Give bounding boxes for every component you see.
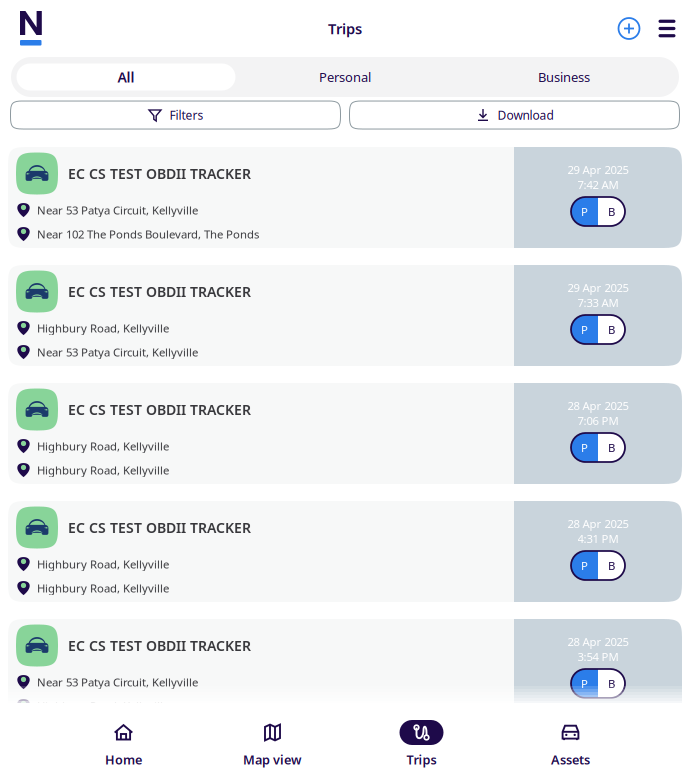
staticText: EC CS TEST OBDII TRACKER	[68, 636, 251, 655]
staticText: P	[581, 322, 588, 337]
button[interactable]: Filters	[10, 101, 340, 129]
staticText: B	[608, 558, 615, 573]
button[interactable]: Home	[49, 703, 198, 772]
staticText: Business	[538, 68, 590, 86]
staticText: Highbury Road, Kellyville	[37, 462, 169, 478]
staticText: Near 53 Patya Circuit, Kellyville	[37, 202, 198, 218]
staticText: P	[581, 440, 588, 455]
staticText: Trips	[328, 18, 362, 38]
button[interactable]: EC CS TEST OBDII TRACKER	[8, 265, 682, 366]
button[interactable]: Assets	[496, 703, 645, 772]
staticText: P	[581, 558, 588, 573]
staticText: Assets	[551, 751, 590, 768]
staticText: All	[117, 67, 134, 87]
button[interactable]: Home logo	[10, 7, 53, 50]
staticText: 29 Apr 2025	[567, 162, 628, 177]
button[interactable]: Personal	[235, 63, 454, 90]
button[interactable]: EC CS TEST OBDII TRACKER	[8, 147, 682, 248]
staticText: Download	[497, 107, 553, 123]
staticText: EC CS TEST OBDII TRACKER	[68, 282, 251, 301]
staticText: EC CS TEST OBDII TRACKER	[68, 518, 251, 537]
staticText: 7:06 PM	[577, 413, 618, 428]
staticText: Highbury Road, Kellyville	[37, 438, 169, 454]
staticText: Highbury Road, Kellyville	[37, 320, 169, 336]
button[interactable]: Download	[349, 101, 679, 129]
staticText: P	[581, 676, 588, 691]
staticText: Near 102 The Ponds Boulevard, The Ponds	[37, 226, 259, 242]
button[interactable]: EC CS TEST OBDII TRACKER	[8, 383, 682, 484]
staticText: 28 Apr 2025	[567, 516, 628, 531]
button[interactable]: EC CS TEST OBDII TRACKER	[8, 501, 682, 602]
staticText: B	[608, 676, 615, 691]
staticText: B	[608, 440, 615, 455]
staticText: P	[581, 204, 588, 219]
staticText: Highbury Road, Kellyville	[37, 556, 169, 572]
staticText: 3:54 PM	[577, 649, 618, 664]
staticText: Trips	[406, 751, 436, 768]
button[interactable]: Trips	[347, 703, 496, 772]
staticText: B	[608, 204, 615, 219]
staticText: Personal	[319, 68, 371, 86]
staticText: 29 Apr 2025	[567, 280, 628, 295]
staticText: Near 53 Patya Circuit, Kellyville	[37, 344, 198, 360]
button[interactable]: Menu	[646, 7, 688, 50]
staticText: EC CS TEST OBDII TRACKER	[68, 400, 251, 419]
staticText: Map view	[243, 751, 302, 768]
staticText: 28 Apr 2025	[567, 398, 628, 413]
staticText: 28 Apr 2025	[567, 634, 628, 649]
staticText: B	[608, 322, 615, 337]
staticText: EC CS TEST OBDII TRACKER	[68, 164, 251, 183]
button[interactable]: Map view	[198, 703, 347, 772]
staticText: Near 53 Patya Circuit, Kellyville	[37, 674, 198, 690]
staticText: 7:33 AM	[577, 295, 618, 310]
staticText: Filters	[169, 107, 203, 123]
staticText: 7:42 AM	[577, 177, 618, 192]
staticText: Highbury Road, Kellyville	[37, 580, 169, 596]
button[interactable]: All	[16, 63, 235, 90]
staticText: 4:31 PM	[577, 531, 618, 546]
button[interactable]: Add	[612, 6, 646, 50]
button[interactable]: EC CS TEST OBDII TRACKER	[8, 619, 682, 720]
staticText: Home	[105, 751, 142, 768]
button[interactable]: Business	[454, 63, 673, 90]
